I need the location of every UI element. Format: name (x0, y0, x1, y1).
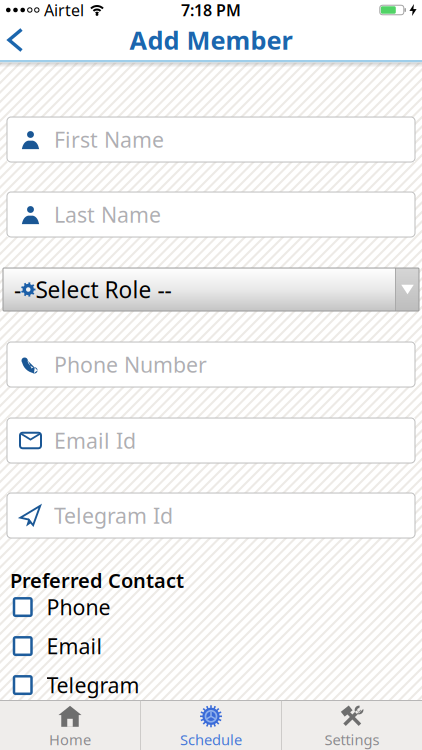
button[interactable]: Email (0, 637, 422, 656)
button[interactable]: - (0, 268, 422, 311)
staticText: Email Id (54, 426, 136, 455)
staticText: Airtel (44, 0, 84, 21)
staticText: Schedule (180, 730, 242, 749)
button[interactable]: Home (0, 701, 140, 750)
staticText: Phone Number (54, 350, 207, 379)
staticText: First Name (54, 125, 164, 154)
button[interactable]: First Name (0, 117, 422, 162)
staticText: - (14, 274, 21, 304)
button[interactable]: Telegram Id (0, 493, 422, 538)
button[interactable]: Telegram (0, 676, 422, 695)
button[interactable]: Phone Number (0, 342, 422, 387)
staticText: Home (49, 730, 91, 749)
button[interactable]: Back (0, 21, 21, 58)
staticText: Telegram (46, 671, 139, 699)
button[interactable]: Schedule (141, 701, 281, 750)
staticText: 7:18 PM (181, 0, 241, 21)
staticText: Select Role -- (35, 274, 171, 304)
button[interactable]: Settings (282, 701, 422, 750)
staticText: Email (46, 632, 102, 660)
staticText: Settings (324, 730, 379, 749)
button[interactable]: Last Name (0, 192, 422, 237)
button[interactable]: Email Id (0, 418, 422, 463)
staticText: Preferred Contact (10, 567, 184, 594)
button[interactable]: Phone (0, 598, 422, 617)
staticText: Add Member (129, 23, 292, 57)
staticText: Last Name (54, 200, 161, 229)
staticText: Phone (46, 593, 110, 621)
staticText: Telegram Id (54, 501, 173, 530)
